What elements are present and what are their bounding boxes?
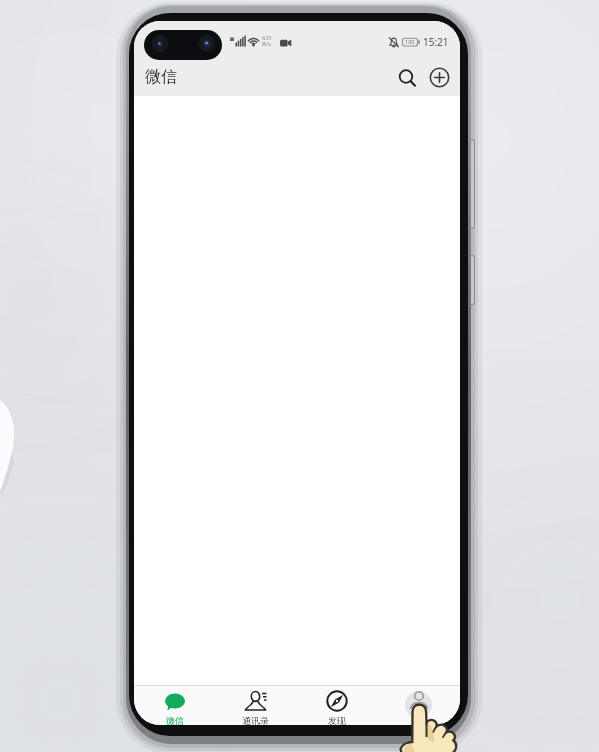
button[interactable]: 微信 [134,686,215,725]
button[interactable]: 通讯录 [215,686,296,725]
staticText: 631 [262,34,273,42]
button[interactable]: 我 [378,686,460,725]
staticText: 通讯录 [242,715,269,725]
button[interactable] [395,66,419,90]
staticText: 微信 [145,67,177,87]
staticText: 发现 [328,715,346,725]
staticText: 微信 [166,715,184,725]
button[interactable]: 发现 [296,686,378,725]
button[interactable] [428,66,452,90]
staticText: B/s [262,40,272,48]
staticText: 100 [405,38,415,45]
staticText: 15:21 [423,35,449,49]
